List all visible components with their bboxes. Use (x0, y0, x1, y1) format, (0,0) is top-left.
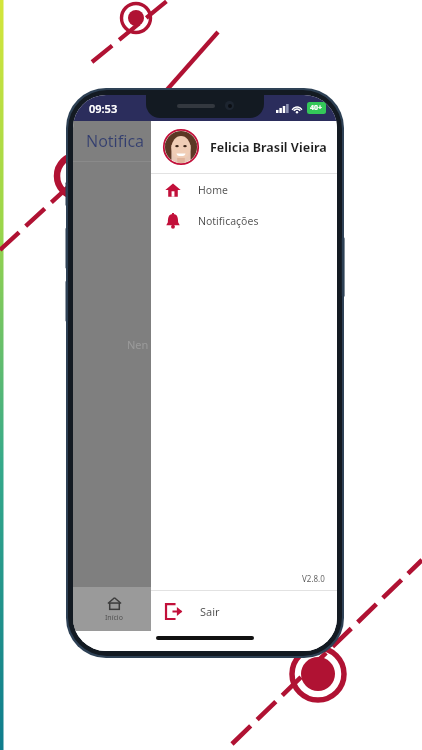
staticText: Início (105, 613, 123, 623)
staticText: Nen (127, 337, 149, 352)
staticText: Notificações (198, 214, 259, 228)
staticText: Sair (200, 604, 220, 619)
staticText: Home (198, 183, 228, 197)
staticText: Felicia Brasil Vieira (210, 139, 327, 156)
button[interactable]: Felicia Brasil Vieira (151, 121, 337, 173)
button[interactable]: Início (99, 593, 129, 626)
button[interactable]: Home (151, 174, 337, 205)
other: Home (165, 182, 181, 198)
other: Sair (165, 603, 182, 620)
staticText: 09:53 (89, 101, 118, 116)
button[interactable]: Notificações (151, 205, 337, 236)
staticText: Notifica (86, 130, 145, 152)
other: Notificações (165, 213, 181, 229)
button[interactable]: Sair (151, 591, 337, 631)
staticText: V2.8.0 (302, 573, 325, 584)
staticText: 40+ (310, 103, 323, 113)
